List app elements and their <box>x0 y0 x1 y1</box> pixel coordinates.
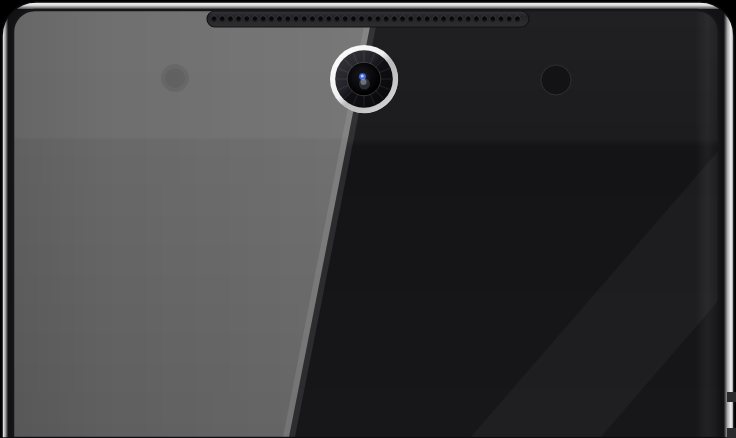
button[interactable]: Phone front camera and earpiece close-up <box>0 0 736 438</box>
